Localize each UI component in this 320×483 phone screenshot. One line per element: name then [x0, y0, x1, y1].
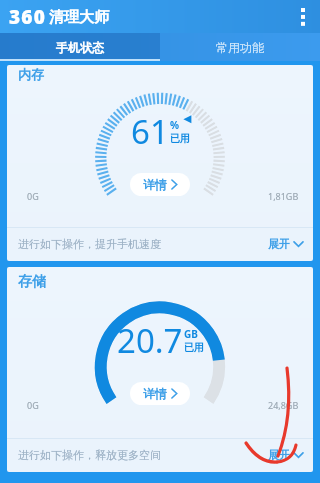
staticText: 存储 [18, 273, 46, 291]
button[interactable]: 展开 [258, 442, 313, 468]
button[interactable]: 详情 [130, 382, 190, 405]
staticText: 360 [9, 4, 47, 30]
staticText: 0G [27, 399, 39, 411]
staticText: 展开 [268, 448, 290, 462]
staticText: 内存 [18, 66, 44, 82]
staticText: 1,81GB [268, 190, 299, 202]
staticText: 进行如下操作，释放更多空间 [18, 448, 161, 462]
staticText: 进行如下操作，提升手机速度 [18, 237, 161, 251]
button[interactable]: More options [286, 0, 320, 33]
staticText: 24,8GB [268, 399, 299, 411]
staticText: 已用 [184, 341, 204, 354]
staticText: 20.7 [117, 318, 183, 363]
staticText: 0G [27, 190, 39, 202]
staticText: 61 [131, 109, 169, 154]
button[interactable]: 展开 [258, 231, 313, 257]
button[interactable]: 详情 [130, 173, 190, 196]
staticText: 详情 [143, 386, 167, 401]
staticText: 详情 [143, 177, 167, 192]
staticText: 已用 [170, 132, 190, 145]
staticText: 展开 [268, 237, 290, 251]
staticText: 清理大师 [49, 8, 109, 27]
staticText: 手机状态 [56, 40, 104, 55]
button[interactable]: 手机状态 [0, 33, 160, 61]
staticText: % [170, 118, 180, 132]
button[interactable]: 常用功能 [160, 33, 320, 61]
staticText: GB [184, 327, 198, 341]
staticText: 常用功能 [216, 40, 264, 55]
